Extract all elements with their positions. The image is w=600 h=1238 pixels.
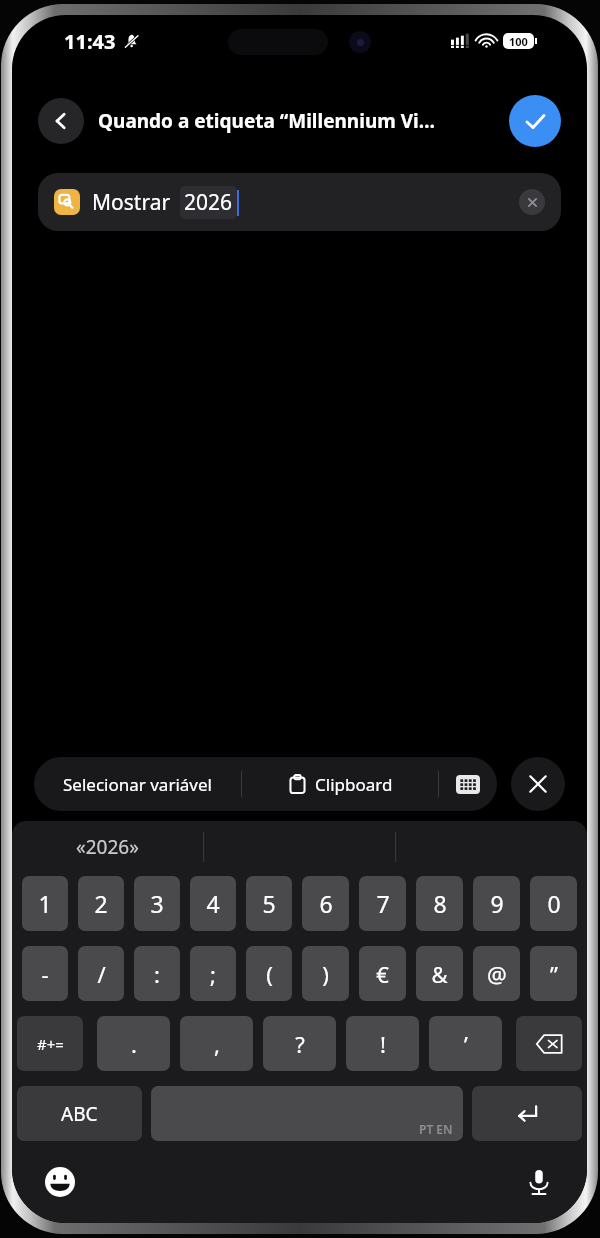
button[interactable]: . <box>97 1016 170 1071</box>
staticText: ? <box>295 1029 305 1059</box>
button[interactable]: Fechar <box>511 757 565 811</box>
button[interactable]: 5 <box>246 876 292 931</box>
staticText: . <box>131 1029 137 1059</box>
button[interactable]: 6 <box>302 876 349 931</box>
staticText: ( <box>266 959 273 989</box>
staticText: 7 <box>376 888 390 919</box>
button[interactable]: Ditado <box>519 1162 559 1202</box>
button[interactable]: ( <box>246 946 292 1001</box>
staticText: Selecionar variável <box>63 773 212 796</box>
staticText: 4 <box>206 888 220 919</box>
button[interactable]: Teclado <box>439 757 497 811</box>
button[interactable]: , <box>180 1016 253 1071</box>
button[interactable]: @ <box>473 946 520 1001</box>
staticText: 2 <box>94 888 108 919</box>
staticText: / <box>97 959 106 989</box>
button[interactable]: 7 <box>359 876 406 931</box>
button[interactable]: / <box>78 946 124 1001</box>
button[interactable]: 0 <box>530 876 577 931</box>
button[interactable]: #+= <box>17 1016 83 1071</box>
button[interactable]: Enter <box>472 1086 582 1141</box>
staticText: € <box>376 959 389 989</box>
staticText: 2026 <box>184 188 233 217</box>
button[interactable]: Voltar <box>38 98 84 144</box>
staticText: @ <box>487 959 507 989</box>
staticText: 6 <box>319 888 333 919</box>
button[interactable]: - <box>22 946 68 1001</box>
button[interactable]: PT EN <box>151 1086 463 1141</box>
button[interactable]: 3 <box>134 876 180 931</box>
staticText: Clipboard <box>315 773 393 796</box>
staticText: #+= <box>37 1034 64 1054</box>
button[interactable]: «2026» <box>12 821 203 873</box>
button[interactable]: Selecionar variável <box>34 757 241 811</box>
staticText: ! <box>380 1029 386 1059</box>
staticText: 9 <box>490 888 504 919</box>
button[interactable]: ABC <box>17 1086 142 1141</box>
button[interactable]: ’ <box>429 1016 502 1071</box>
staticText: Quando a etiqueta “Millennium Vi… <box>98 108 501 134</box>
staticText: 5 <box>262 888 276 919</box>
button[interactable]: Concluir <box>509 95 561 147</box>
staticText: , <box>214 1029 220 1059</box>
button[interactable]: ) <box>302 946 349 1001</box>
staticText: 0 <box>547 888 561 919</box>
button[interactable]: : <box>134 946 180 1001</box>
button[interactable]: Mostrar <box>38 173 561 231</box>
staticText: Mostrar <box>92 188 171 217</box>
staticText: - <box>41 959 49 989</box>
button[interactable]: Apagar <box>516 1016 582 1071</box>
button[interactable]: & <box>416 946 463 1001</box>
staticText: ) <box>322 959 329 989</box>
button[interactable]: Limpar <box>519 189 545 215</box>
staticText: & <box>431 959 448 989</box>
button[interactable]: 8 <box>416 876 463 931</box>
staticText: 1 <box>38 888 52 919</box>
button[interactable]: ; <box>190 946 236 1001</box>
button[interactable]: 2 <box>78 876 124 931</box>
button[interactable]: 4 <box>190 876 236 931</box>
button[interactable]: 9 <box>473 876 520 931</box>
staticText: 3 <box>150 888 164 919</box>
staticText: ’ <box>464 1029 468 1059</box>
staticText: 11:43 <box>64 28 116 55</box>
button[interactable]: ? <box>263 1016 336 1071</box>
staticText: ” <box>550 959 558 989</box>
staticText: : <box>154 959 160 989</box>
staticText: ; <box>210 959 216 989</box>
button[interactable]: Clipboard <box>242 757 438 811</box>
staticText: 8 <box>433 888 447 919</box>
staticText: «2026» <box>76 834 139 860</box>
staticText: PT EN <box>419 1121 453 1137</box>
staticText: 100 <box>509 34 528 49</box>
button[interactable]: € <box>359 946 406 1001</box>
button[interactable]: Emoji <box>40 1162 80 1202</box>
button[interactable]: ” <box>530 946 577 1001</box>
staticText: ABC <box>61 1101 98 1127</box>
button[interactable]: ! <box>346 1016 419 1071</box>
button[interactable]: 1 <box>22 876 68 931</box>
